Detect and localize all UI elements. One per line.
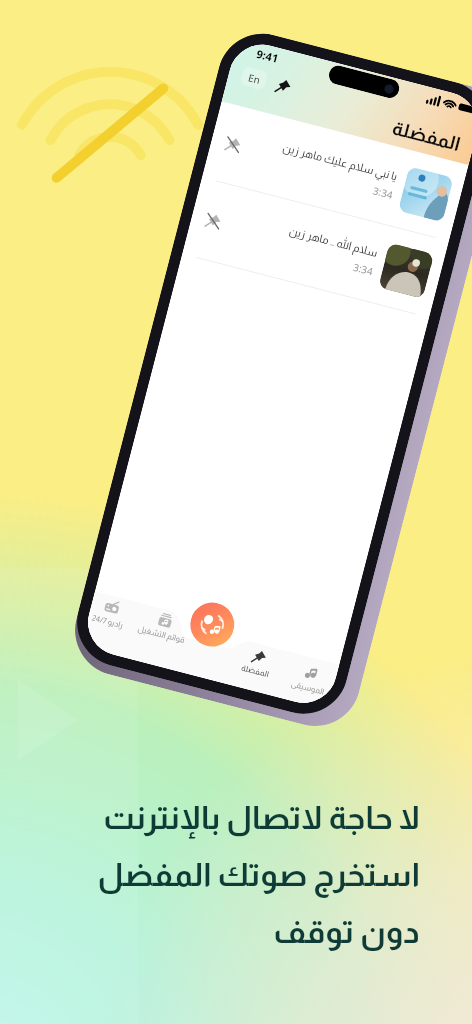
button[interactable]: المفضلة [229,643,286,682]
staticText: 3:34 [352,260,375,278]
button[interactable]: En [239,66,268,90]
staticText: استخرج صوتك المفضل [97,857,420,893]
staticText: دون توقف [272,914,420,950]
staticText: المفضلة [390,117,463,155]
other: Unpin [204,211,223,231]
other: Unpin [223,135,243,154]
staticText: 9:41 [255,46,280,66]
staticText: 3:34 [371,183,394,202]
staticText: En [247,70,262,87]
button[interactable]: Pinned [274,76,293,96]
staticText: راديو 24/7 [91,613,124,630]
button[interactable]: الموسيقى [281,660,337,698]
button[interactable]: قوائم التشغيل [135,606,192,645]
button[interactable]: Unpin [202,101,468,241]
staticText: سلام الله .. ماهر زين [288,224,379,259]
button[interactable]: Convert to audio [185,598,239,651]
staticText: لا حاجة لاتصال بالإنترنت [103,800,420,836]
staticText: قوائم التشغيل [137,624,186,645]
staticText: المفضلة [240,663,270,679]
staticText: الموسيقى [290,679,326,697]
staticText: يا نبي سلام عليك ماهر زين [282,141,399,182]
button[interactable]: راديو 24/7 [87,595,138,633]
button[interactable]: Unpin [182,178,449,317]
